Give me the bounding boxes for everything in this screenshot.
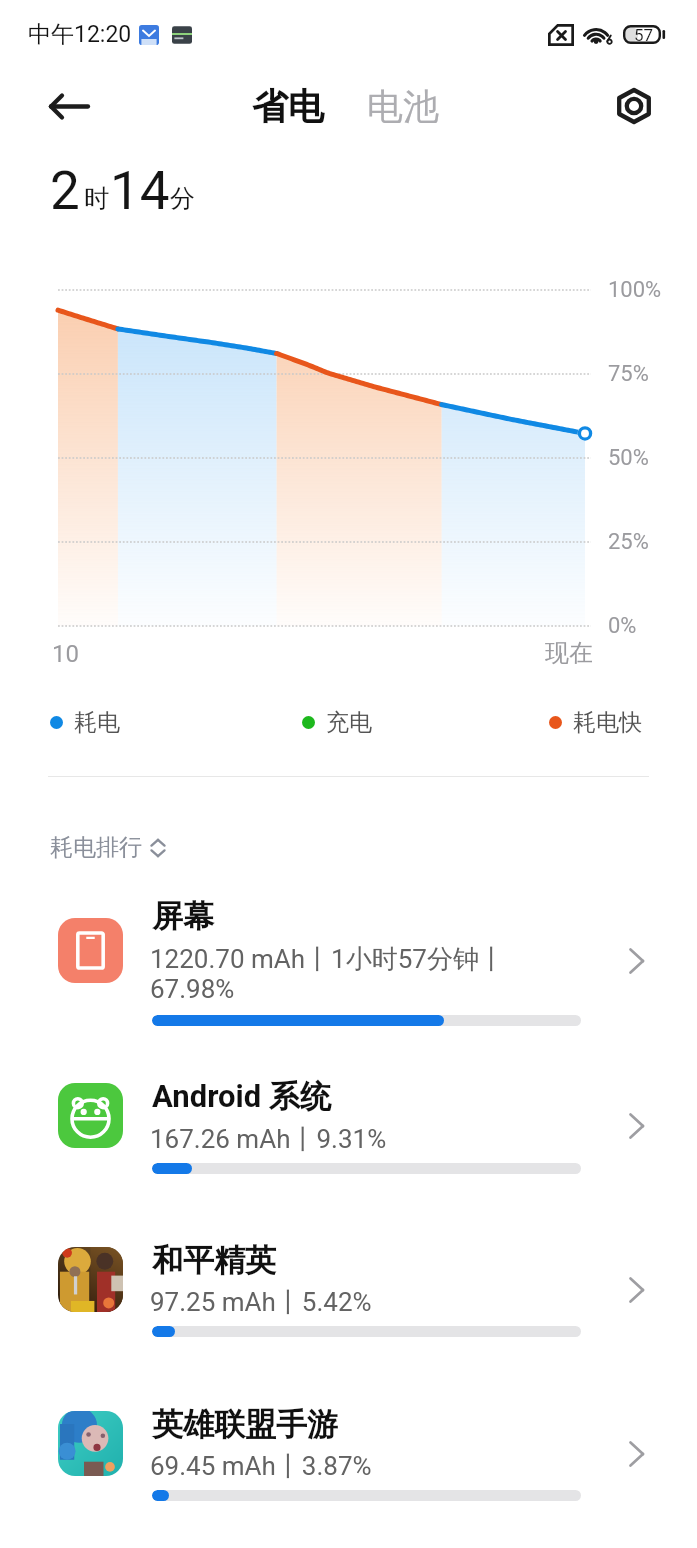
staticText: 2: [50, 160, 80, 222]
button[interactable]: Details: [620, 944, 654, 978]
button[interactable]: Details: [620, 1437, 654, 1471]
staticText: 耗电快: [573, 708, 642, 737]
button[interactable]: Back: [44, 82, 94, 132]
staticText: 100%: [608, 277, 662, 303]
staticText: 0%: [608, 613, 637, 639]
staticText: 中午12:20: [28, 20, 132, 49]
staticText: 耗电排行: [50, 833, 142, 862]
staticText: 和平精英: [152, 1241, 276, 1280]
staticText: 现在: [545, 638, 593, 668]
button[interactable]: [0, 1227, 697, 1333]
button[interactable]: 耗电排行: [50, 833, 166, 862]
staticText: 97.25 mAh丨5.42%: [150, 1286, 372, 1319]
staticText: 75%: [608, 361, 649, 387]
button[interactable]: [0, 1063, 697, 1169]
staticText: 充电: [326, 708, 372, 737]
button[interactable]: 充电: [302, 708, 372, 737]
staticText: 时: [84, 183, 109, 214]
staticText: 57: [634, 25, 654, 45]
button[interactable]: [0, 898, 697, 1004]
button[interactable]: 省电: [252, 84, 324, 129]
staticText: 1220.70 mAh丨1小时57分钟丨: [150, 943, 505, 976]
button[interactable]: Details: [620, 1273, 654, 1307]
staticText: 电池: [367, 84, 439, 129]
staticText: 50%: [608, 445, 649, 471]
staticText: 25%: [608, 529, 649, 555]
staticText: Android 系统: [152, 1077, 331, 1116]
staticText: 耗电: [74, 708, 120, 737]
button[interactable]: Details: [620, 1109, 654, 1143]
staticText: 14: [110, 160, 170, 222]
staticText: 省电: [252, 84, 324, 129]
button[interactable]: 耗电: [50, 708, 120, 737]
staticText: 英雄联盟手游: [152, 1405, 338, 1444]
staticText: 67.98%: [150, 974, 235, 1004]
button[interactable]: [0, 1391, 697, 1497]
staticText: 167.26 mAh丨9.31%: [150, 1123, 387, 1156]
button[interactable]: Settings: [610, 82, 658, 130]
staticText: 屏幕: [152, 897, 214, 936]
staticText: 10: [52, 640, 79, 668]
staticText: 69.45 mAh丨3.87%: [150, 1450, 372, 1483]
button[interactable]: 耗电快: [549, 708, 642, 737]
button[interactable]: 电池: [367, 84, 439, 129]
staticText: 分: [170, 183, 195, 214]
